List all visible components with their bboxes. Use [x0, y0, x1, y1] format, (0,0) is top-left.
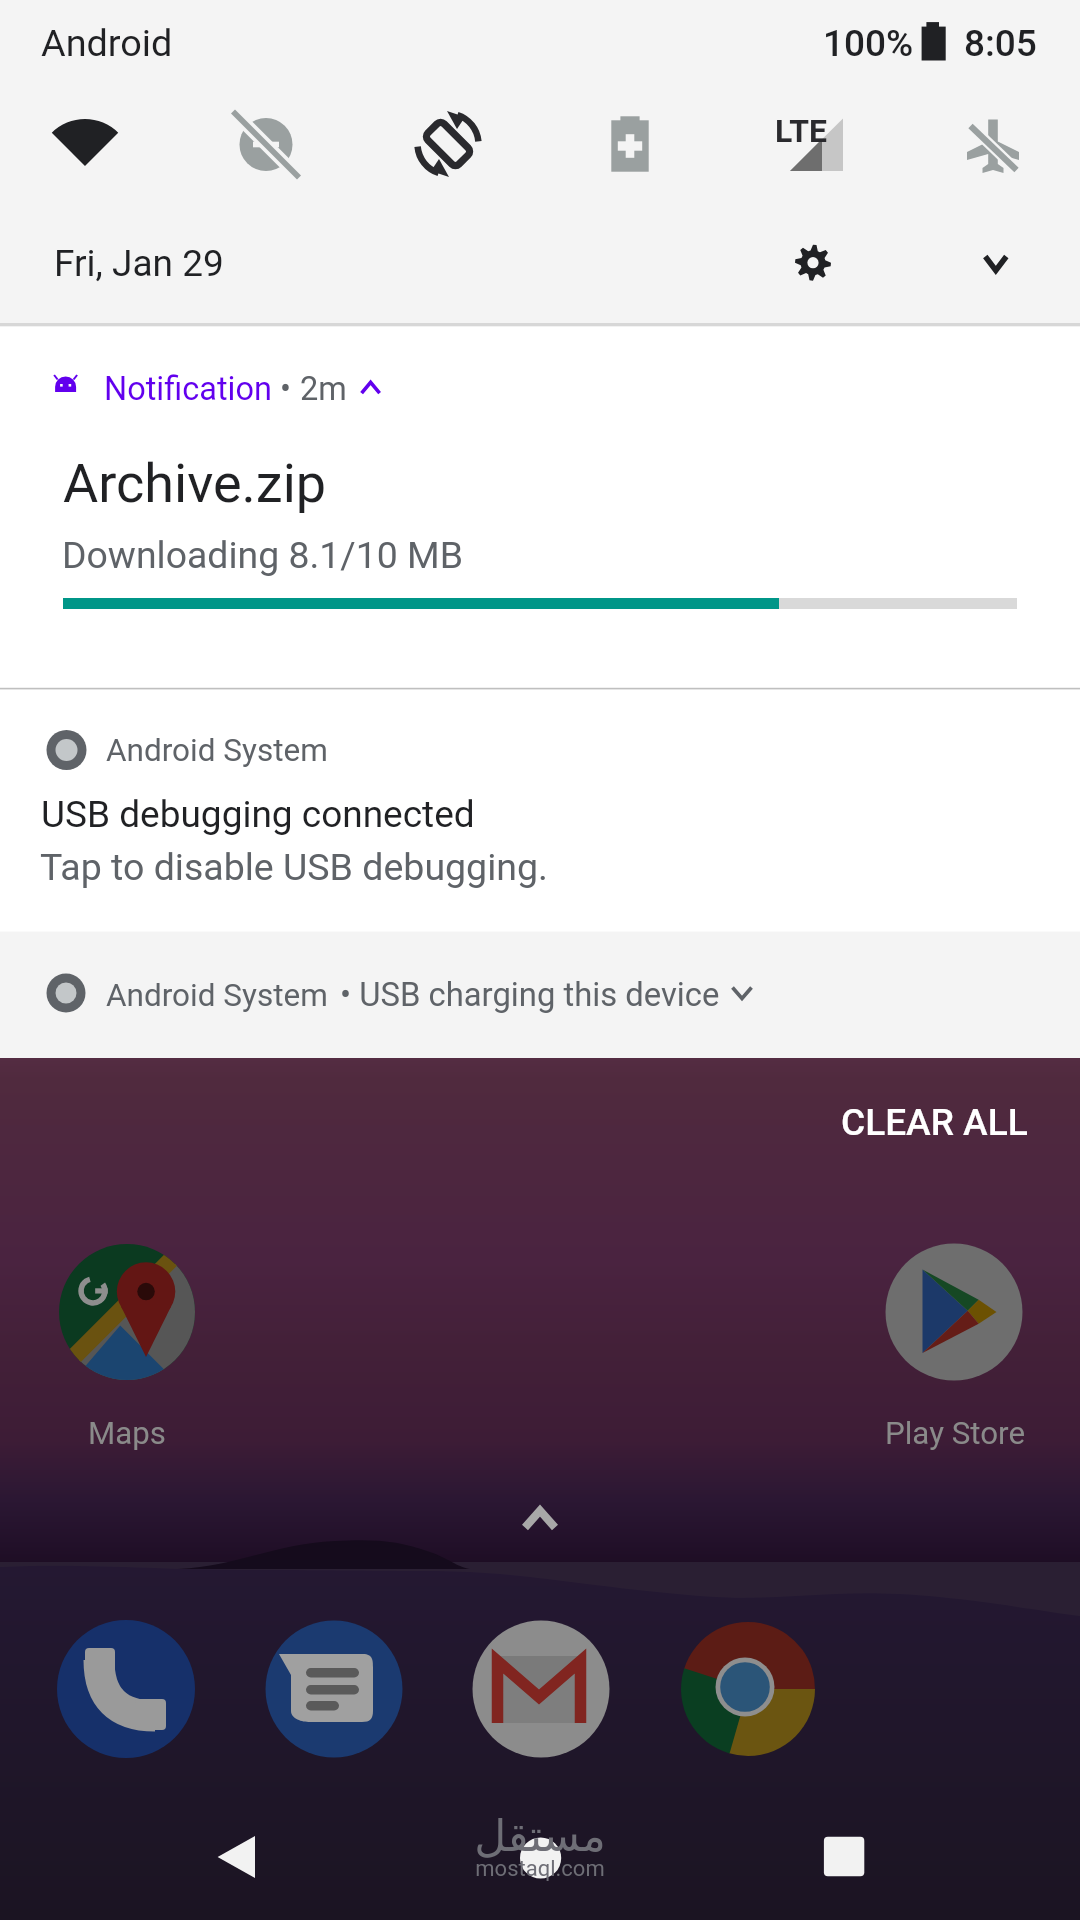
staticText: Notification [104, 370, 272, 408]
button[interactable]: Phone [57, 1620, 195, 1758]
button[interactable]: Messages [265, 1620, 403, 1758]
button[interactable]: Gmail [472, 1620, 610, 1758]
button[interactable]: Notification [0, 326, 1080, 688]
staticText: Maps [55, 1415, 199, 1452]
staticText: • USB charging this device [340, 976, 720, 1014]
button[interactable]: Maps [55, 1240, 199, 1455]
staticText: مستقل [340, 1810, 740, 1861]
staticText: Play Store [883, 1415, 1027, 1452]
button[interactable]: Chrome [681, 1620, 819, 1758]
button[interactable]: Expand quick settings [964, 229, 1028, 297]
button[interactable]: Auto-rotate [360, 95, 540, 195]
staticText: Downloading 8.1/10 MB [62, 533, 464, 577]
button[interactable]: Battery saver [540, 95, 720, 195]
button[interactable]: Android System [0, 932, 1080, 1058]
staticText: Fri, Jan 29 [54, 242, 224, 285]
button[interactable]: Airplane mode [900, 95, 1080, 195]
staticText: Tap to disable USB debugging. [40, 845, 548, 889]
staticText: • [280, 370, 291, 408]
button[interactable]: Do not disturb [180, 95, 360, 195]
staticText: Android System [106, 977, 328, 1014]
button[interactable]: Android System [0, 690, 1080, 932]
staticText: Archive.zip [63, 452, 327, 515]
button[interactable]: Open app drawer [480, 1492, 600, 1552]
staticText: Android [41, 21, 173, 65]
button[interactable]: Recent apps [784, 1798, 904, 1918]
staticText: 8:05 [964, 22, 1037, 65]
button[interactable]: Back [176, 1798, 296, 1918]
button[interactable]: Wi-Fi [0, 95, 180, 195]
staticText: CLEAR ALL [841, 1101, 1028, 1144]
button[interactable]: Play Store [883, 1240, 1027, 1455]
staticText: mostaql.com [340, 1856, 740, 1882]
staticText: Android System [106, 732, 328, 769]
staticText: 100% [823, 22, 914, 65]
button[interactable]: Home [481, 1798, 601, 1918]
staticText: LTE [775, 112, 827, 150]
button[interactable]: CLEAR ALL [812, 1091, 1040, 1155]
staticText: 2m [300, 370, 347, 408]
staticText: USB debugging connected [41, 793, 475, 836]
button[interactable]: Settings [781, 229, 845, 297]
button[interactable]: Mobile data [720, 95, 900, 195]
